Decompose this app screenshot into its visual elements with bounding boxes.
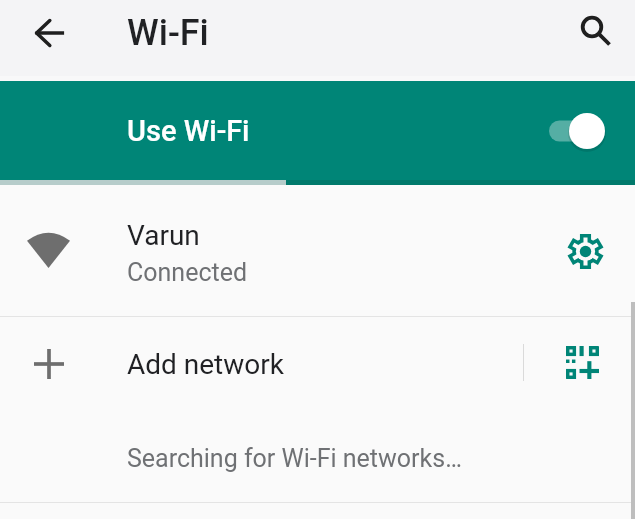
staticText: Searching for Wi-Fi networks…	[127, 444, 462, 473]
button[interactable]: Use Wi-Fi	[0, 81, 635, 180]
button[interactable]: Network settings	[561, 227, 609, 275]
staticText: Varun	[127, 219, 200, 252]
staticText: Wi-Fi	[127, 12, 209, 54]
button[interactable]: Scan QR code	[559, 339, 605, 385]
button[interactable]: Varun	[0, 185, 635, 316]
button[interactable]: Search	[564, 0, 620, 55]
button[interactable]: Add network	[0, 317, 635, 411]
staticText: Connected	[127, 258, 248, 287]
staticText: Add network	[127, 348, 284, 381]
staticText: Use Wi-Fi	[127, 114, 250, 148]
button[interactable]: Back	[21, 4, 79, 62]
